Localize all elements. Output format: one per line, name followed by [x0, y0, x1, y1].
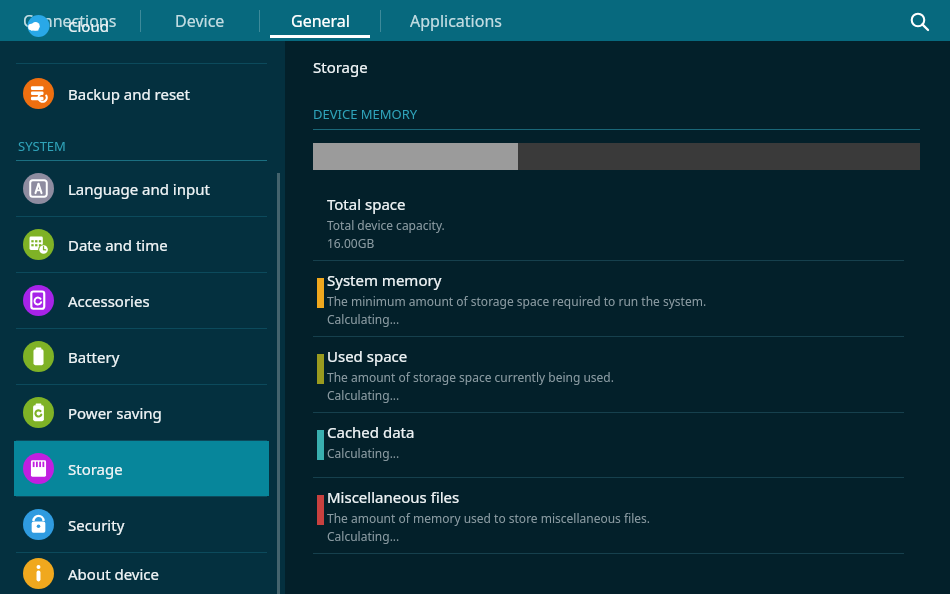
staticText: Connections — [23, 10, 117, 32]
staticText: Total device capacity. — [327, 217, 445, 233]
staticText: Storage — [313, 57, 368, 77]
button[interactable]: Language and input — [14, 161, 269, 216]
staticText: Calculating... — [327, 528, 400, 544]
button[interactable]: Storage — [14, 441, 269, 496]
button[interactable]: Connections — [0, 0, 140, 41]
staticText: Applications — [410, 10, 502, 32]
button[interactable]: Backup and reset — [14, 64, 269, 122]
button[interactable]: Date and time — [14, 217, 269, 272]
staticText: Date and time — [68, 235, 168, 255]
staticText: About device — [68, 564, 160, 584]
staticText: Cached data — [327, 422, 415, 442]
staticText: SYSTEM — [18, 137, 66, 155]
staticText: Calculating... — [327, 387, 400, 403]
staticText: Language and input — [68, 179, 210, 199]
staticText: The amount of memory used to store misce… — [327, 510, 651, 526]
staticText: The minimum amount of storage space requ… — [327, 293, 707, 309]
staticText: Used space — [327, 346, 408, 366]
staticText: Accessories — [68, 291, 150, 311]
staticText: DEVICE MEMORY — [313, 105, 418, 123]
staticText: Miscellaneous files — [327, 487, 460, 507]
button[interactable]: Cloud — [14, 15, 109, 37]
staticText: Storage — [68, 459, 123, 479]
staticText: Calculating... — [327, 445, 400, 461]
staticText: Backup and reset — [68, 84, 190, 104]
button[interactable]: Search — [902, 4, 936, 38]
staticText: The amount of storage space currently be… — [327, 369, 614, 385]
button[interactable]: Accessories — [14, 273, 269, 328]
staticText: Security — [68, 515, 125, 535]
staticText: General — [291, 10, 350, 32]
button[interactable]: Battery — [14, 329, 269, 384]
button[interactable]: Applications — [381, 0, 531, 41]
button[interactable]: Device — [141, 0, 259, 41]
staticText: 16.00GB — [327, 235, 375, 251]
staticText: Calculating... — [327, 311, 400, 327]
button[interactable]: General — [260, 0, 380, 41]
staticText: Cloud — [68, 16, 109, 36]
staticText: Total space — [327, 194, 406, 214]
button[interactable]: About device — [14, 553, 269, 594]
button[interactable]: Power saving — [14, 385, 269, 440]
staticText: Battery — [68, 347, 120, 367]
staticText: Device — [175, 10, 225, 32]
staticText: System memory — [327, 270, 442, 290]
staticText: Power saving — [68, 403, 162, 423]
button[interactable]: Security — [14, 497, 269, 552]
